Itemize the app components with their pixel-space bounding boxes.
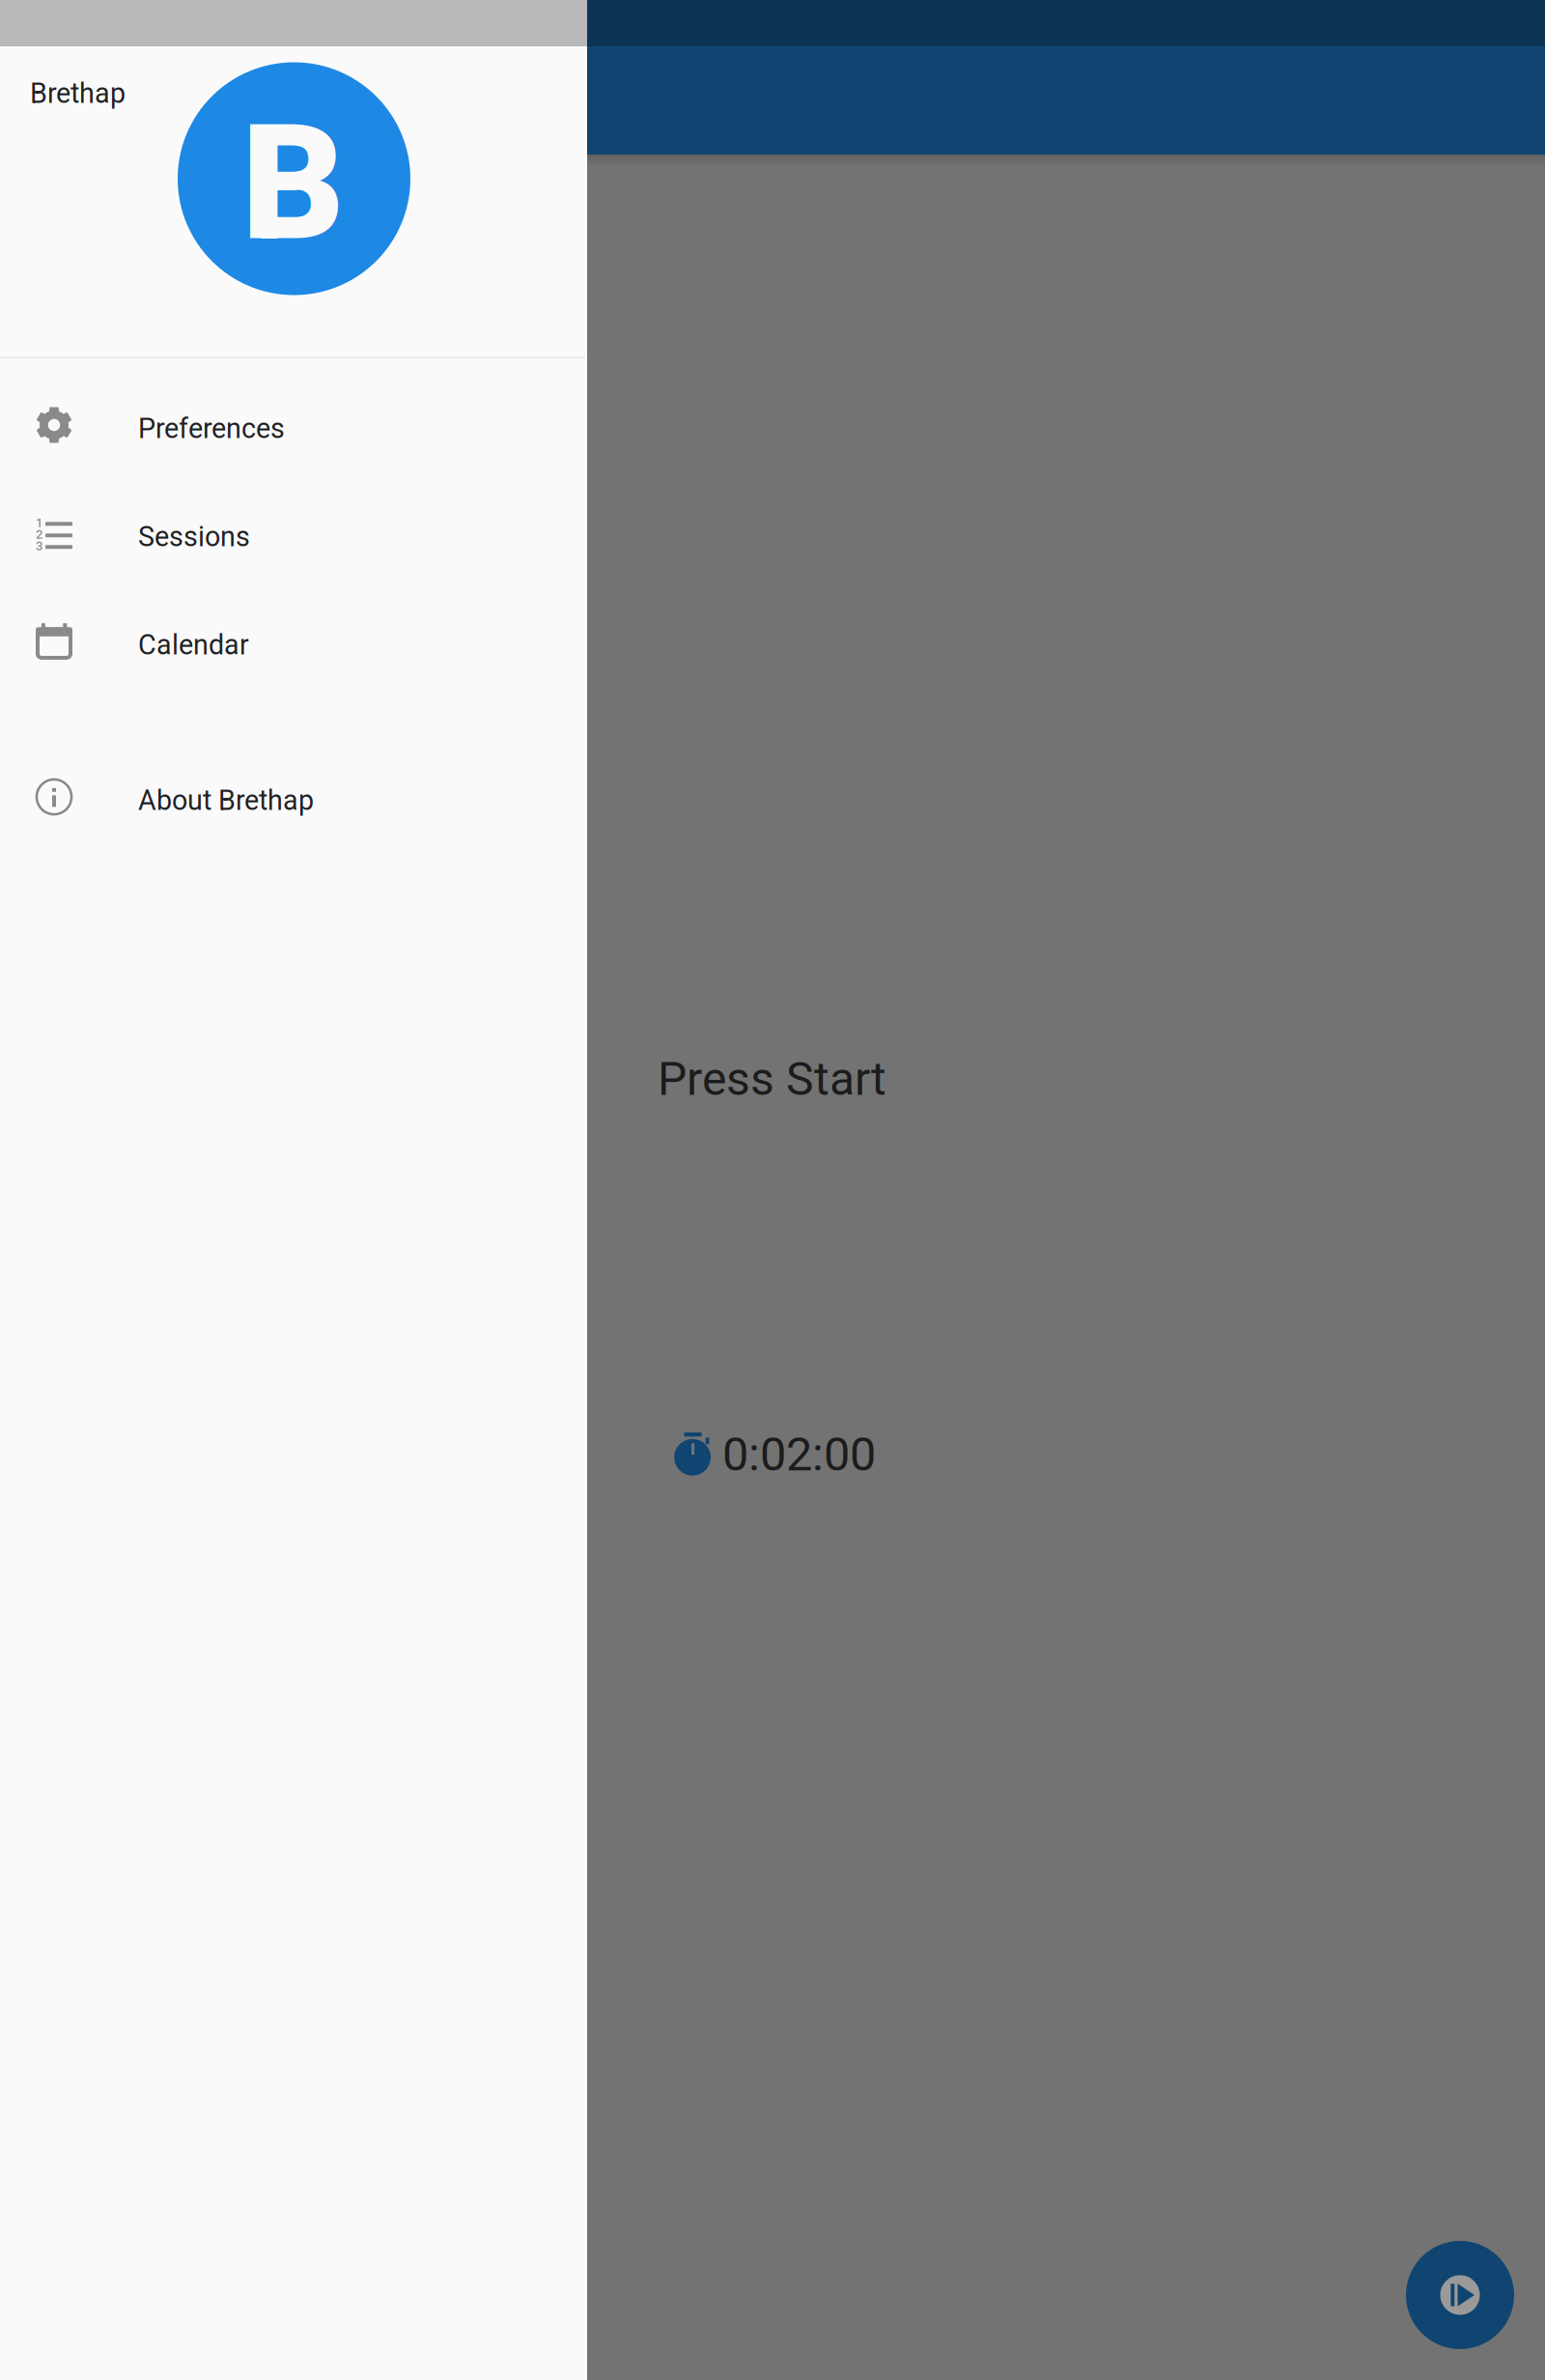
staticText: Brethap	[30, 77, 126, 110]
staticText: Calendar	[138, 629, 249, 661]
button[interactable]: Calendar	[0, 588, 587, 696]
button[interactable]: Start session	[1406, 2241, 1514, 2349]
staticText: 2	[36, 527, 42, 542]
button[interactable]: Close navigation drawer	[0, 0, 1545, 2380]
staticText: 3	[36, 539, 42, 553]
staticText: Preferences	[138, 412, 285, 445]
staticText: About Brethap	[138, 784, 314, 817]
staticText: Press Start	[658, 1052, 886, 1106]
button[interactable]: Preferences	[0, 372, 587, 480]
staticText: B	[241, 90, 345, 277]
staticText: 1	[36, 516, 42, 530]
staticText: Sessions	[138, 521, 250, 553]
staticText: 0:02:00	[722, 1427, 876, 1482]
button[interactable]: 1	[0, 480, 587, 588]
button[interactable]: About Brethap	[0, 744, 587, 852]
